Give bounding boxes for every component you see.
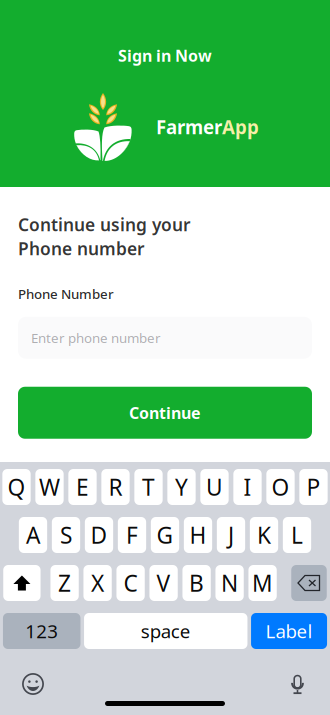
staticText: X [91,568,104,598]
button[interactable]: D [85,517,113,553]
button[interactable]: Delete [291,565,327,601]
staticText: U [206,472,223,502]
button[interactable]: R [101,469,130,505]
button[interactable]: W [35,469,64,505]
staticText: G [156,520,173,550]
staticText: Sign in Now [118,45,212,66]
staticText: Continue using your [18,213,191,236]
button[interactable]: A [19,517,47,553]
staticText: J [228,520,234,550]
button[interactable]: space [84,613,247,649]
button[interactable]: V [149,565,178,601]
staticText: H [189,520,206,550]
button[interactable]: Q [2,469,31,505]
staticText: V [157,568,171,598]
staticText: Farmer [156,115,222,139]
staticText: F [126,520,138,550]
staticText: Continue [129,402,201,423]
staticText: T [142,472,155,502]
button[interactable]: C [116,565,145,601]
staticText: Q [7,472,25,502]
staticText: Label [266,619,313,643]
button[interactable]: S [52,517,80,553]
button[interactable]: M [248,565,277,601]
button[interactable]: E [68,469,97,505]
button[interactable]: G [151,517,179,553]
button[interactable]: L [283,517,311,553]
button[interactable]: K [250,517,278,553]
button[interactable]: Y [167,469,196,505]
button[interactable]: 123 [3,613,80,649]
staticText: A [26,520,40,550]
staticText: R [108,472,122,502]
staticText: I [243,472,251,502]
staticText: Z [58,568,71,598]
staticText: M [252,568,273,598]
button[interactable]: Label [251,613,327,649]
staticText: W [39,472,60,502]
button[interactable]: Continue [18,387,312,439]
staticText: S [60,520,72,550]
staticText: App [222,115,259,139]
button[interactable]: H [184,517,212,553]
staticText: Phone number [18,237,145,260]
staticText: 123 [25,619,58,643]
staticText: K [257,520,271,550]
staticText: C [124,568,138,598]
staticText: N [221,568,238,598]
button[interactable]: B [182,565,211,601]
button[interactable]: P [299,469,328,505]
button[interactable]: Z [50,565,79,601]
button[interactable]: I [233,469,262,505]
staticText: L [291,520,303,550]
staticText: Y [175,472,188,502]
staticText: P [306,472,320,502]
button[interactable]: Emoji [22,673,44,695]
button[interactable]: Dictation [290,673,305,695]
staticText: D [90,520,107,550]
staticText: E [76,472,89,502]
button[interactable]: Shift [3,565,40,601]
staticText: space [141,619,191,643]
button[interactable]: N [215,565,244,601]
staticText: Phone Number [18,285,114,303]
staticText: Enter phone number [31,329,161,347]
button[interactable]: J [217,517,245,553]
staticText: B [189,568,204,598]
button[interactable]: T [134,469,163,505]
button[interactable]: U [200,469,229,505]
button[interactable]: F [118,517,146,553]
button[interactable]: O [266,469,295,505]
staticText: O [271,472,289,502]
button[interactable]: X [83,565,112,601]
